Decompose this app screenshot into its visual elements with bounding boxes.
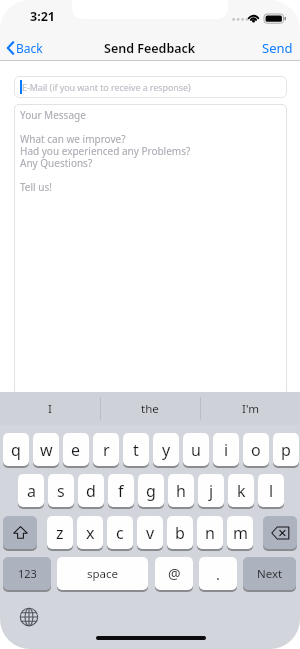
staticText: Your Message What can we improve? Had yo… bbox=[20, 108, 191, 194]
button[interactable]: d bbox=[78, 474, 104, 507]
staticText: Send Feedback bbox=[104, 40, 196, 56]
staticText: I bbox=[48, 401, 52, 417]
button[interactable]: s bbox=[48, 474, 74, 507]
button[interactable]: f bbox=[108, 474, 134, 507]
staticText: g bbox=[146, 480, 156, 502]
button[interactable]: p bbox=[273, 433, 299, 466]
button[interactable]: @ bbox=[155, 557, 193, 590]
button[interactable]: n bbox=[197, 516, 223, 549]
button[interactable]: the bbox=[100, 392, 200, 425]
button[interactable]: b bbox=[167, 516, 193, 549]
staticText: k bbox=[237, 480, 246, 502]
button[interactable]: j bbox=[198, 474, 224, 507]
button[interactable]: x bbox=[77, 516, 103, 549]
staticText: . bbox=[216, 564, 220, 584]
staticText: 3:21 bbox=[30, 8, 55, 23]
staticText: e bbox=[71, 439, 81, 461]
staticText: w bbox=[40, 439, 53, 461]
button[interactable]: Your Message What can we improve? Had yo… bbox=[14, 104, 287, 396]
staticText: Next bbox=[257, 566, 283, 582]
button[interactable]: 123 bbox=[3, 557, 51, 590]
button[interactable]: t bbox=[123, 433, 149, 466]
button[interactable]: u bbox=[183, 433, 209, 466]
staticText: o bbox=[251, 439, 261, 461]
staticText: h bbox=[176, 480, 186, 502]
staticText: d bbox=[86, 480, 96, 502]
button[interactable]: w bbox=[33, 433, 59, 466]
button[interactable]: Back bbox=[4, 39, 50, 57]
button[interactable]: Send bbox=[256, 39, 296, 57]
button[interactable]: I'm bbox=[200, 392, 300, 425]
staticText: i bbox=[224, 439, 229, 461]
button[interactable]: v bbox=[137, 516, 163, 549]
staticText: v bbox=[146, 522, 155, 544]
button[interactable]: E-Mail (if you want to receive a respons… bbox=[14, 76, 287, 98]
button[interactable]: I bbox=[0, 392, 100, 425]
staticText: z bbox=[56, 522, 64, 544]
button[interactable]: Next bbox=[243, 557, 296, 590]
button[interactable]: i bbox=[213, 433, 239, 466]
button[interactable]: space bbox=[57, 557, 148, 590]
staticText: space bbox=[87, 566, 119, 582]
staticText: the bbox=[141, 401, 159, 417]
button[interactable]: a bbox=[18, 474, 44, 507]
staticText: a bbox=[27, 480, 36, 502]
button[interactable]: m bbox=[227, 516, 253, 549]
button[interactable]: y bbox=[153, 433, 179, 466]
staticText: y bbox=[162, 439, 171, 461]
staticText: Back bbox=[16, 40, 43, 56]
staticText: p bbox=[281, 439, 291, 461]
button[interactable] bbox=[263, 516, 297, 549]
staticText: j bbox=[209, 480, 214, 502]
staticText: l bbox=[269, 480, 274, 502]
button[interactable]: k bbox=[228, 474, 254, 507]
staticText: q bbox=[11, 439, 21, 461]
button[interactable]: g bbox=[138, 474, 164, 507]
button[interactable]: c bbox=[107, 516, 133, 549]
button[interactable]: z bbox=[47, 516, 73, 549]
staticText: s bbox=[57, 480, 65, 502]
staticText: c bbox=[116, 522, 124, 544]
staticText: f bbox=[118, 480, 124, 502]
button[interactable]: l bbox=[258, 474, 284, 507]
staticText: m bbox=[233, 522, 248, 544]
staticText: r bbox=[103, 439, 110, 461]
staticText: Send bbox=[262, 39, 293, 57]
button[interactable]: q bbox=[3, 433, 29, 466]
staticText: b bbox=[175, 522, 185, 544]
staticText: @ bbox=[168, 564, 181, 583]
button[interactable] bbox=[17, 605, 41, 629]
button[interactable]: r bbox=[93, 433, 119, 466]
staticText: 123 bbox=[18, 566, 37, 581]
button[interactable]: e bbox=[63, 433, 89, 466]
button[interactable] bbox=[3, 516, 37, 549]
staticText: t bbox=[133, 439, 139, 461]
staticText: E-Mail (if you want to receive a respons… bbox=[22, 81, 191, 93]
staticText: I'm bbox=[242, 401, 259, 417]
button[interactable]: . bbox=[199, 557, 237, 590]
button[interactable]: h bbox=[168, 474, 194, 507]
staticText: u bbox=[191, 439, 201, 461]
button[interactable]: o bbox=[243, 433, 269, 466]
staticText: x bbox=[86, 522, 95, 544]
staticText: n bbox=[205, 522, 215, 544]
